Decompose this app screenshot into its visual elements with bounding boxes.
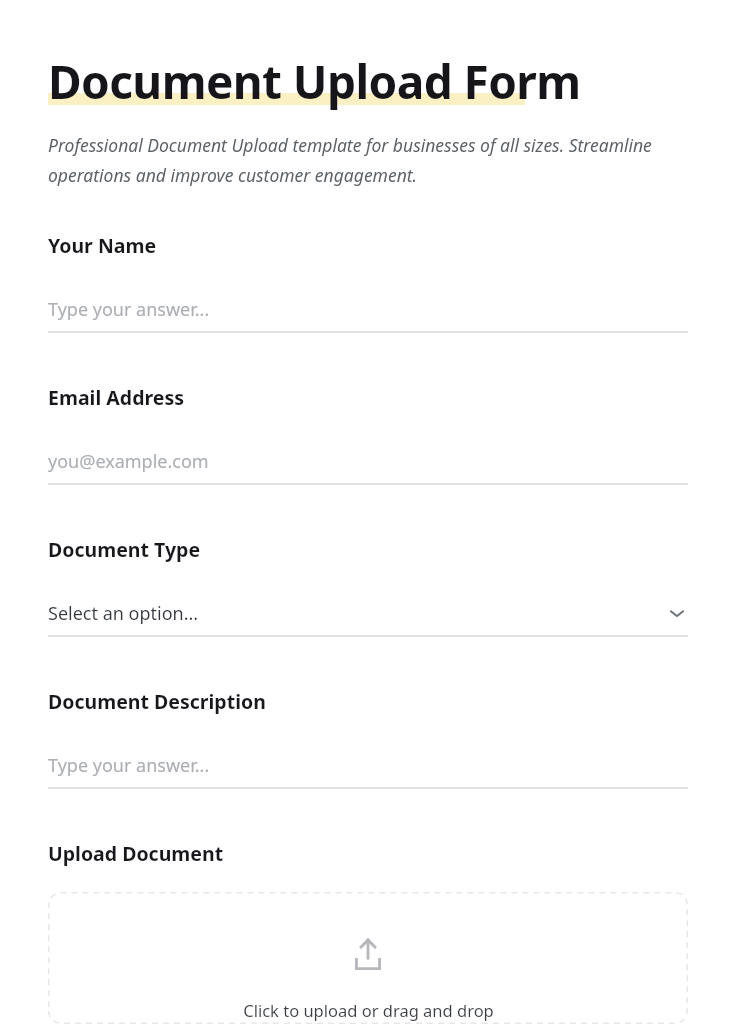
staticText: Type your answer... <box>48 297 210 322</box>
staticText: Document Type <box>48 536 201 563</box>
other: Upload document <box>351 938 385 972</box>
staticText: Click to upload or drag and drop <box>243 999 494 1021</box>
staticText: Your Name <box>48 232 157 259</box>
button[interactable]: Select an option... <box>48 600 688 637</box>
staticText: Document Description <box>48 688 266 715</box>
button[interactable]: Type your answer... <box>48 296 688 333</box>
button[interactable]: you@example.com <box>48 448 688 485</box>
staticText: Upload Document <box>48 840 224 867</box>
staticText: Select an option... <box>48 601 199 626</box>
staticText: you@example.com <box>48 449 209 474</box>
button[interactable]: Type your answer... <box>48 752 688 789</box>
button[interactable]: Upload document <box>48 892 688 1024</box>
staticText: Type your answer... <box>48 753 210 778</box>
staticText: Email Address <box>48 384 185 411</box>
staticText: Document Upload Form <box>48 50 581 113</box>
staticText: Professional Document Upload template fo… <box>48 133 688 187</box>
other: Open dropdown <box>666 602 688 624</box>
